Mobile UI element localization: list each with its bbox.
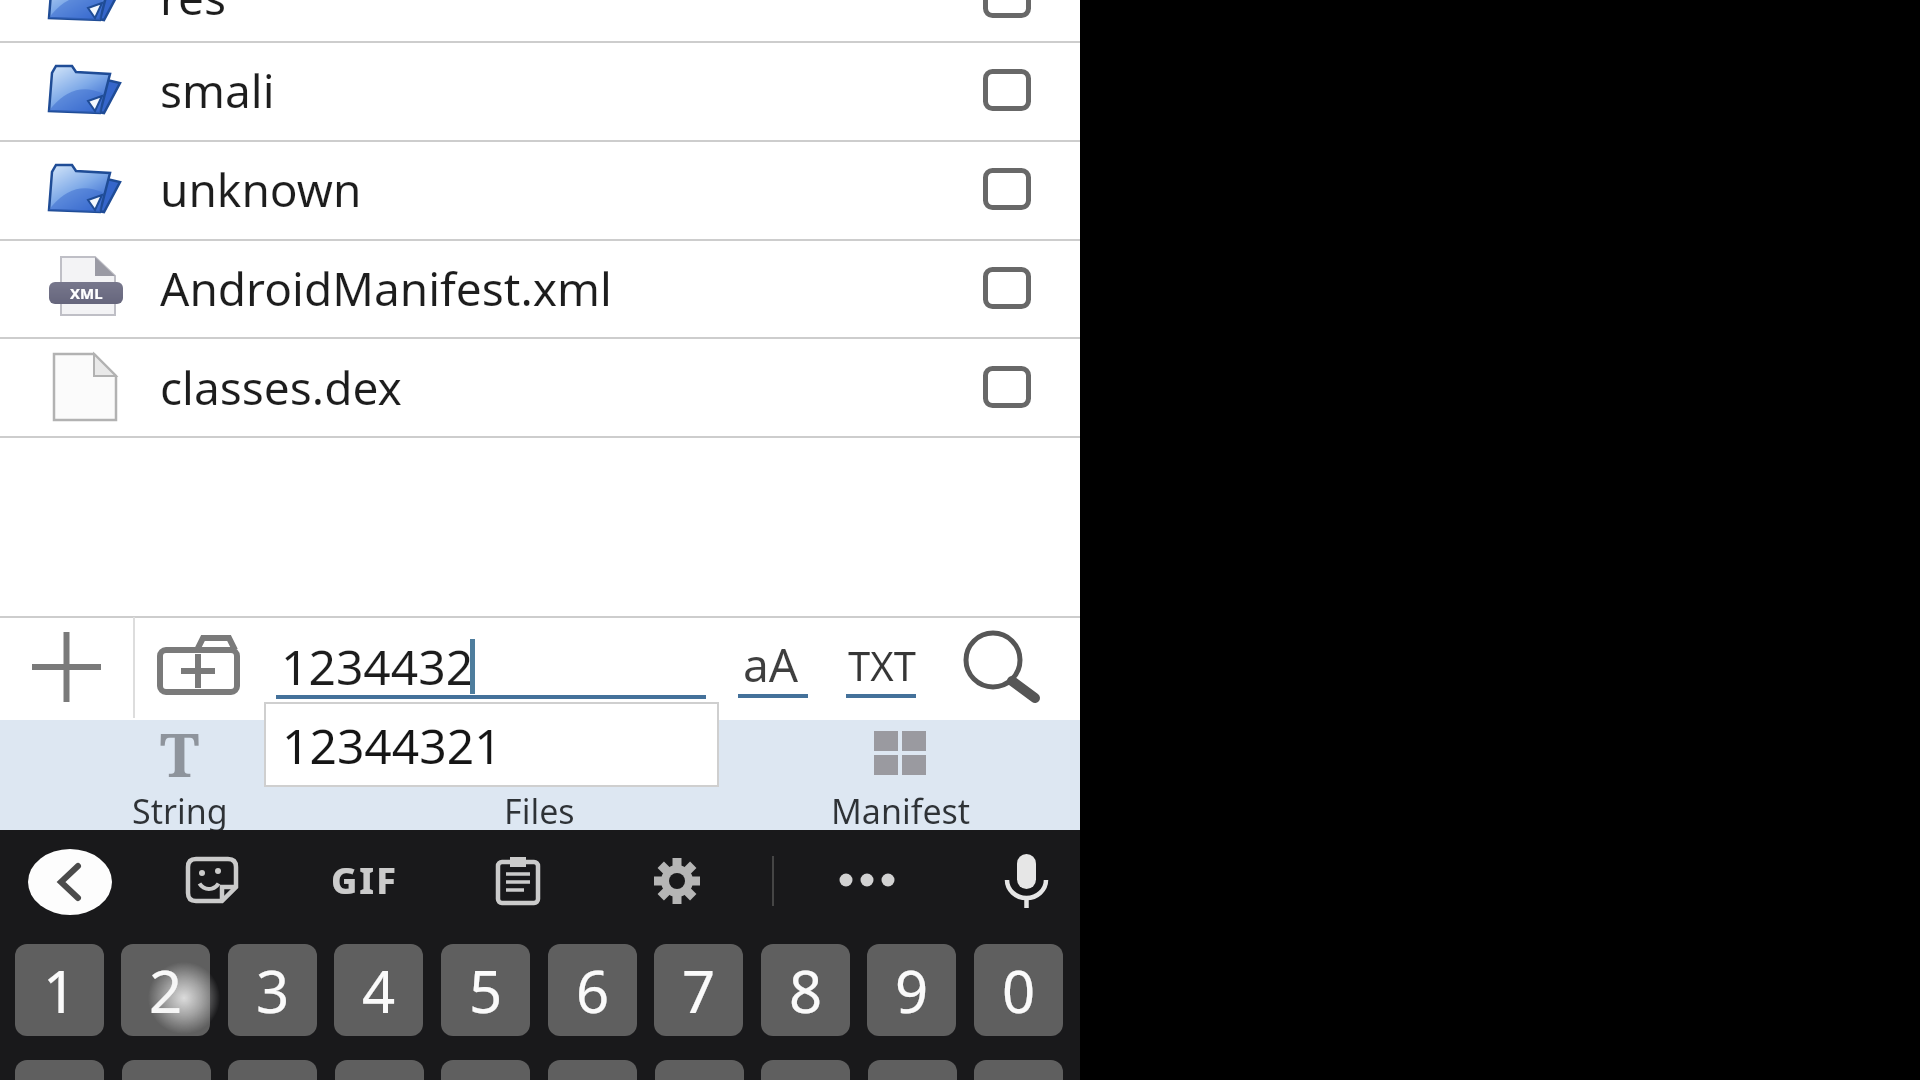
staticText: 1234432	[281, 634, 474, 699]
button[interactable]: 2	[121, 944, 210, 1036]
button[interactable]: 8	[761, 944, 850, 1036]
button[interactable]	[646, 850, 708, 912]
button[interactable]	[360, 720, 720, 830]
button[interactable]: 4	[334, 944, 423, 1036]
button[interactable]	[0, 140, 1080, 238]
staticText: classes.dex	[160, 356, 402, 419]
staticText: Files	[504, 788, 575, 834]
staticText: TXT	[848, 638, 916, 692]
button[interactable]	[834, 630, 928, 702]
staticText: 9	[895, 951, 929, 1030]
button[interactable]: 6	[548, 944, 637, 1036]
button[interactable]	[318, 852, 412, 910]
button[interactable]: 0	[974, 944, 1063, 1036]
button[interactable]	[488, 850, 550, 912]
staticText: GIF	[331, 856, 398, 905]
staticText: 4	[362, 951, 396, 1030]
button[interactable]	[180, 850, 244, 912]
staticText: Manifest	[831, 788, 971, 834]
staticText: 8	[789, 951, 823, 1030]
staticText: T	[160, 713, 200, 793]
button[interactable]	[996, 848, 1056, 914]
button[interactable]	[135, 618, 260, 718]
staticText: smali	[160, 59, 275, 122]
staticText: 0	[1002, 951, 1036, 1030]
staticText: 12344321	[282, 713, 502, 778]
button[interactable]	[950, 624, 1060, 714]
button[interactable]	[0, 720, 360, 830]
button[interactable]: 7	[654, 944, 743, 1036]
button[interactable]	[266, 704, 717, 785]
button[interactable]	[0, 239, 1080, 337]
button[interactable]	[0, 41, 1080, 139]
staticText: res	[160, 0, 227, 29]
button[interactable]	[720, 720, 1080, 830]
staticText: 1	[43, 951, 77, 1030]
button[interactable]: 3	[228, 944, 317, 1036]
staticText: aA	[743, 633, 799, 696]
button[interactable]	[826, 850, 910, 910]
staticText: 2	[149, 951, 183, 1030]
staticText: String	[132, 788, 228, 834]
button[interactable]	[730, 630, 814, 702]
button[interactable]	[0, 0, 1080, 46]
staticText: XML	[70, 283, 103, 303]
staticText: AndroidManifest.xml	[160, 257, 612, 320]
button[interactable]: 5	[441, 944, 530, 1036]
staticText: 6	[576, 951, 610, 1030]
staticText: 7	[682, 951, 716, 1030]
staticText: 3	[256, 951, 290, 1030]
staticText: 5	[469, 951, 503, 1030]
button[interactable]: 9	[867, 944, 956, 1036]
button[interactable]	[22, 842, 118, 922]
staticText: unknown	[160, 158, 362, 221]
button[interactable]	[0, 338, 1080, 436]
button[interactable]	[0, 618, 133, 718]
button[interactable]: 1	[15, 944, 104, 1036]
